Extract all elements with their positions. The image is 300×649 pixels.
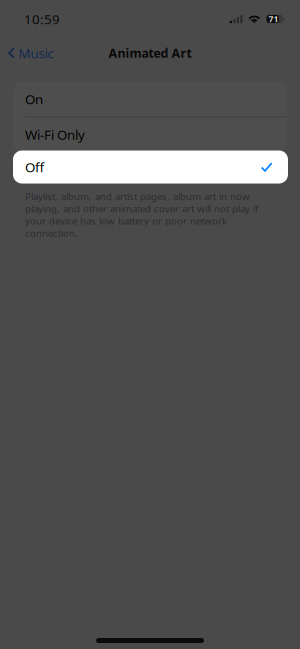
staticText: Animated Art [108, 45, 191, 61]
staticText: 10:59 [24, 10, 60, 28]
staticText: 71 [268, 13, 278, 25]
button[interactable]: Wi-Fi Only [13, 117, 287, 152]
button[interactable]: Off [13, 150, 288, 183]
staticText: Playlist, album, and artist pages, album… [25, 190, 258, 239]
staticText: Off [25, 158, 44, 176]
staticText: On [25, 90, 43, 108]
staticText: Wi-Fi Only [25, 126, 85, 144]
button[interactable]: On [13, 81, 287, 116]
staticText: Music [18, 44, 53, 62]
button[interactable]: Music [0, 39, 53, 67]
